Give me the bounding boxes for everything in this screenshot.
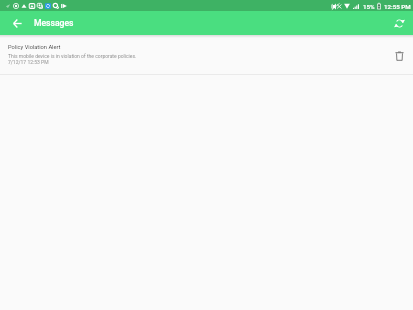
staticText: 12:55 PM bbox=[384, 3, 411, 10]
button[interactable]: Navigate up bbox=[7, 13, 28, 34]
staticText: Policy Violation Alert bbox=[8, 44, 61, 51]
staticText: Messages bbox=[34, 18, 74, 28]
button[interactable]: Policy Violation Alert bbox=[0, 38, 413, 74]
button[interactable]: Delete message bbox=[389, 45, 409, 65]
staticText: 7/12/17 12:53 PM bbox=[8, 59, 49, 65]
staticText: 15% bbox=[363, 3, 375, 10]
button[interactable]: Refresh bbox=[389, 13, 410, 34]
staticText: This mobile device is in violation of th… bbox=[8, 53, 137, 59]
